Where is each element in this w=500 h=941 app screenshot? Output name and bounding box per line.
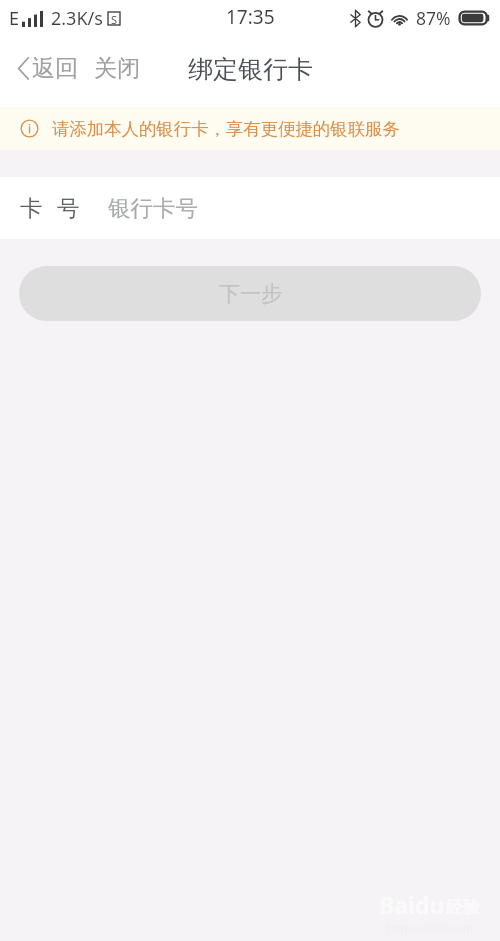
staticText: 银行卡号 <box>108 194 198 222</box>
staticText: 绑定银行卡 <box>188 54 313 85</box>
staticText: 下一步 <box>219 281 282 307</box>
staticText: E <box>9 6 20 31</box>
staticText: 经验 <box>446 897 480 918</box>
staticText: 2.3K/s <box>51 6 103 31</box>
staticText: 返回 <box>32 54 78 83</box>
staticText: 87% <box>416 6 451 30</box>
button[interactable]: 卡 <box>0 177 500 239</box>
staticText: 17:35 <box>226 4 275 30</box>
button[interactable]: 下一步 <box>19 266 481 321</box>
staticText: 请添加本人的银行卡，享有更便捷的银联服务 <box>52 118 400 140</box>
button[interactable]: 返回 Back <box>0 46 84 91</box>
staticText: 关闭 <box>94 54 140 83</box>
staticText: S <box>111 12 118 25</box>
staticText: 卡 <box>20 194 43 222</box>
staticText: 号 <box>57 194 80 222</box>
button[interactable]: 关闭 <box>88 46 146 91</box>
